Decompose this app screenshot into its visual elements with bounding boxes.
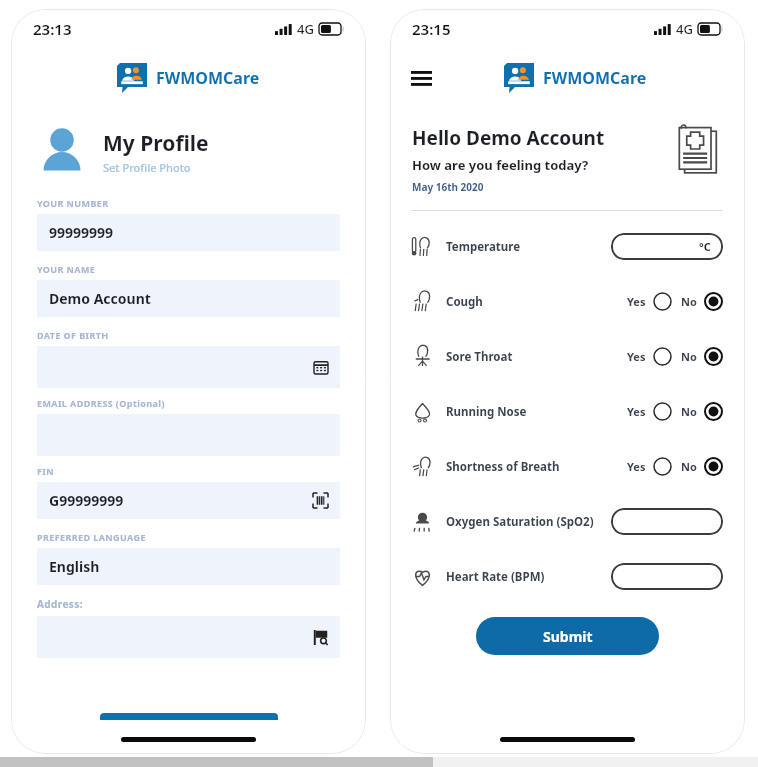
button[interactable]: No	[704, 457, 723, 476]
button[interactable]: Cough	[412, 274, 723, 329]
button[interactable]: No	[704, 292, 723, 311]
staticText: 99999999	[49, 223, 114, 242]
button[interactable]	[611, 563, 711, 590]
staticText: °C	[699, 239, 711, 254]
button[interactable]: Shortness of Breath	[412, 439, 723, 494]
button[interactable]: Sore Throat	[412, 329, 723, 384]
staticText: EMAIL ADDRESS (Optional)	[37, 397, 165, 409]
staticText: Sore Throat	[446, 349, 513, 365]
staticText: Heart Rate (BPM)	[446, 569, 545, 585]
button[interactable]: English	[49, 548, 328, 585]
staticText: 4G	[297, 20, 314, 38]
staticText: YOUR NAME	[37, 263, 96, 275]
staticText: Demo Account	[49, 289, 151, 308]
other: Pick date	[314, 360, 328, 374]
button[interactable]: °C	[611, 233, 711, 260]
button[interactable]	[611, 508, 711, 535]
staticText: YOUR NUMBER	[37, 197, 109, 209]
button[interactable]: Find address	[49, 616, 328, 658]
staticText: Address:	[37, 597, 83, 611]
staticText: Hello Demo Account	[412, 125, 605, 151]
staticText: Yes	[627, 349, 646, 364]
button[interactable]: Yes	[653, 292, 672, 311]
staticText: Oxygen Saturation (SpO2)	[446, 514, 594, 530]
staticText: PREFERRED LANGUAGE	[37, 531, 146, 543]
button[interactable]: No	[704, 347, 723, 366]
staticText: FIN	[37, 465, 54, 477]
button[interactable]: Oxygen Saturation (SpO2)	[412, 494, 723, 549]
staticText: Yes	[627, 294, 646, 309]
staticText: FWMOMCare	[156, 67, 260, 89]
staticText: No	[681, 349, 697, 364]
button[interactable]: Temperature	[412, 219, 723, 274]
button[interactable]: Menu	[406, 63, 436, 93]
button[interactable]: Demo Account	[49, 280, 328, 317]
staticText: No	[681, 459, 697, 474]
staticText: 23:13	[33, 19, 72, 39]
button[interactable]: Yes	[653, 402, 672, 421]
staticText: Cough	[446, 294, 483, 310]
staticText: Shortness of Breath	[446, 459, 560, 475]
button[interactable]: Yes	[653, 347, 672, 366]
staticText: Temperature	[446, 239, 521, 255]
button[interactable]: Running Nose	[412, 384, 723, 439]
staticText: No	[681, 404, 697, 419]
other: Find address	[313, 630, 328, 645]
staticText: Set Profile Photo	[103, 160, 191, 175]
button[interactable]: 99999999	[49, 214, 328, 251]
staticText: Yes	[627, 459, 646, 474]
button[interactable]	[100, 713, 278, 720]
button[interactable]: Heart Rate (BPM)	[412, 549, 723, 604]
staticText: How are you feeling today?	[412, 156, 589, 174]
staticText: May 16th 2020	[412, 180, 484, 194]
staticText: Submit	[543, 627, 593, 646]
button[interactable]: No	[704, 402, 723, 421]
button[interactable]: Pick date	[49, 346, 328, 388]
staticText: My Profile	[103, 129, 209, 158]
button[interactable]: My Profile	[37, 127, 366, 177]
staticText: Running Nose	[446, 404, 527, 420]
staticText: G99999999	[49, 491, 124, 510]
staticText: English	[49, 557, 100, 576]
button[interactable]: G99999999	[49, 482, 328, 519]
button[interactable]: Yes	[653, 457, 672, 476]
staticText: 23:15	[412, 19, 451, 39]
staticText: Yes	[627, 404, 646, 419]
staticText: 4G	[676, 20, 693, 38]
staticText: No	[681, 294, 697, 309]
button[interactable]: Submit	[476, 617, 659, 655]
staticText: DATE OF BIRTH	[37, 329, 109, 341]
other: Scan barcode	[313, 493, 328, 508]
staticText: FWMOMCare	[543, 67, 647, 89]
